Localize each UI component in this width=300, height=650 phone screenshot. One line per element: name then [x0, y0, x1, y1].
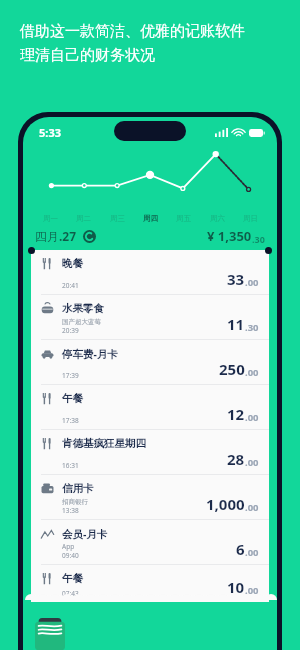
staticText: 11	[227, 314, 245, 334]
staticText: 招商银行	[62, 498, 88, 506]
staticText: App	[62, 542, 75, 551]
staticText: 信用卡	[62, 482, 94, 495]
staticText: 借助这一款简洁、优雅的记账软件	[20, 22, 245, 41]
staticText: 周五	[176, 214, 191, 223]
staticText: 国产超大蓝莓	[62, 318, 101, 326]
staticText: 周三	[110, 214, 125, 223]
button[interactable]: 午餐	[31, 385, 269, 429]
staticText: 17:38	[62, 416, 79, 425]
button[interactable]: 午餐	[31, 565, 269, 602]
staticText: 16:31	[62, 461, 79, 470]
staticText: 理清自己的财务状况	[20, 46, 155, 65]
staticText: 07:43	[62, 589, 79, 598]
staticText: 20:41	[62, 281, 79, 290]
staticText: .27	[59, 228, 77, 244]
staticText: 6	[236, 539, 245, 559]
staticText: 12	[227, 404, 245, 424]
staticText: 四月	[35, 229, 59, 244]
staticText: .00	[245, 456, 259, 469]
button[interactable]: 肯德基疯狂星期四	[31, 430, 269, 474]
staticText: 13:38	[62, 506, 79, 515]
staticText: 250	[219, 359, 245, 379]
staticText: 周四	[143, 214, 158, 223]
button[interactable]: Budget	[35, 618, 65, 650]
staticText: 周日	[243, 214, 258, 223]
staticText: .00	[245, 584, 259, 597]
staticText: .30	[245, 321, 259, 334]
staticText: 33	[227, 269, 245, 289]
staticText: 5:33	[39, 125, 61, 140]
staticText: 午餐	[62, 392, 83, 405]
staticText: .00	[245, 276, 259, 289]
button[interactable]: 水果零食	[31, 295, 269, 339]
staticText: 晚餐	[62, 257, 83, 270]
staticText: .30	[252, 233, 265, 245]
staticText: .00	[245, 501, 259, 514]
staticText: .00	[245, 366, 259, 379]
staticText: 午餐	[62, 572, 83, 585]
staticText: .00	[245, 546, 259, 559]
staticText: 28	[227, 449, 245, 469]
staticText: 20:39	[62, 326, 79, 335]
staticText: 水果零食	[62, 302, 104, 315]
staticText: 会员-月卡	[62, 527, 108, 541]
staticText: 17:39	[62, 371, 79, 380]
button[interactable]: 停车费-月卡	[31, 340, 269, 384]
button[interactable]: 会员-月卡	[31, 520, 269, 564]
staticText: 09:40	[62, 551, 79, 560]
staticText: 肯德基疯狂星期四	[62, 437, 146, 450]
staticText: 1,000	[206, 494, 245, 514]
staticText: 周二	[76, 214, 91, 223]
staticText: 停车费-月卡	[62, 347, 118, 361]
staticText: 周六	[210, 214, 225, 223]
button[interactable]: Sync	[83, 230, 96, 243]
staticText: ¥ 1,350	[207, 227, 252, 245]
staticText: 周一	[43, 214, 58, 223]
staticText: 10	[227, 577, 245, 597]
button[interactable]: 信用卡	[31, 475, 269, 519]
staticText: .00	[245, 411, 259, 424]
button[interactable]: 晚餐	[31, 250, 269, 294]
